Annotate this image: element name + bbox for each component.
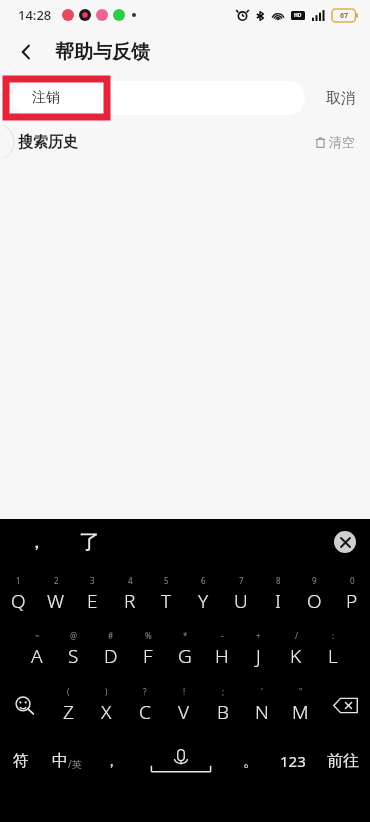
staticText: ! <box>183 686 186 697</box>
button[interactable]: ( <box>49 677 87 733</box>
staticText: A <box>31 643 43 669</box>
staticText: F <box>143 643 153 669</box>
button[interactable]: 1 <box>0 567 37 621</box>
button[interactable]: 取消 <box>322 83 360 114</box>
staticText: M <box>292 699 309 725</box>
staticText: 7 <box>239 575 244 586</box>
staticText: 1 <box>16 575 21 586</box>
button[interactable]: ; <box>203 677 242 733</box>
staticText: 67 <box>340 11 349 21</box>
button[interactable]: Back <box>8 34 44 70</box>
button[interactable]: + <box>240 621 277 677</box>
staticText: R <box>124 588 136 614</box>
staticText: O <box>307 588 322 614</box>
staticText: X <box>101 699 112 725</box>
button[interactable]: ' <box>242 677 281 733</box>
button[interactable]: Emoji <box>0 677 49 733</box>
button[interactable]: @ <box>55 621 92 677</box>
button[interactable]: 清空 <box>312 129 358 155</box>
staticText: * <box>183 630 188 641</box>
staticText: 注销 <box>32 89 60 107</box>
staticText: 2 <box>54 575 59 586</box>
staticText: 。 <box>243 752 258 771</box>
staticText: D <box>104 643 118 669</box>
staticText: ， <box>104 752 119 771</box>
button[interactable] <box>12 81 305 115</box>
staticText: 6 <box>201 575 206 586</box>
staticText: 清空 <box>329 134 355 150</box>
staticText: 123 <box>280 751 306 771</box>
staticText: L <box>328 643 338 669</box>
button[interactable]: 7 <box>222 567 259 621</box>
staticText: @ <box>70 630 78 641</box>
button[interactable]: 。 <box>231 733 270 789</box>
staticText: ' <box>261 686 263 697</box>
staticText: 了 <box>79 529 100 555</box>
staticText: ~ <box>35 630 40 641</box>
button[interactable]: - <box>203 621 240 677</box>
staticText: B <box>217 699 229 725</box>
button[interactable]: 了 <box>62 519 116 565</box>
button[interactable]: : <box>314 621 351 677</box>
button[interactable]: " <box>281 677 320 733</box>
staticText: C <box>139 699 151 725</box>
staticText: G <box>178 643 192 669</box>
button[interactable]: 6 <box>185 567 222 621</box>
button[interactable]: 5 <box>148 567 185 621</box>
button[interactable]: 123 <box>270 733 316 789</box>
staticText: 帮助与反馈 <box>55 40 150 64</box>
staticText: N <box>255 699 269 725</box>
button[interactable]: 2 <box>37 567 74 621</box>
button[interactable]: Space, voice input <box>131 733 231 789</box>
staticText: 0 <box>350 575 355 586</box>
button[interactable]: # <box>92 621 129 677</box>
staticText: T <box>161 588 172 614</box>
button[interactable]: ) <box>87 677 125 733</box>
staticText: K <box>290 643 302 669</box>
staticText: : <box>332 630 335 641</box>
staticText: 8 <box>276 575 281 586</box>
staticText: S <box>68 643 79 669</box>
staticText: % <box>145 630 152 641</box>
button[interactable]: 中 <box>42 733 92 789</box>
staticText: Z <box>63 699 74 725</box>
button[interactable]: ? <box>125 677 164 733</box>
button[interactable]: 3 <box>74 567 111 621</box>
staticText: Y <box>198 588 209 614</box>
staticText: 5 <box>164 575 169 586</box>
staticText: ) <box>105 686 108 697</box>
staticText: ? <box>143 686 147 697</box>
staticText: 搜索历史 <box>18 133 78 152</box>
staticText: H <box>215 643 229 669</box>
button[interactable]: ~ <box>18 621 55 677</box>
button[interactable]: Backspace <box>320 677 370 733</box>
staticText: ( <box>67 686 70 697</box>
staticText: E <box>87 588 98 614</box>
button[interactable]: ! <box>164 677 203 733</box>
staticText: Q <box>11 588 26 614</box>
staticText: " <box>299 686 303 697</box>
staticText: W <box>47 588 65 614</box>
button[interactable]: 0 <box>333 567 370 621</box>
staticText: - <box>221 630 224 641</box>
button[interactable]: 8 <box>259 567 296 621</box>
staticText: I <box>275 588 281 614</box>
staticText: 4 <box>128 575 133 586</box>
button[interactable]: 符 <box>0 733 42 789</box>
button[interactable]: % <box>129 621 166 677</box>
staticText: /英 <box>68 757 82 771</box>
button[interactable]: 9 <box>296 567 333 621</box>
staticText: P <box>346 588 358 614</box>
button[interactable]: 前往 <box>316 733 370 789</box>
button[interactable]: / <box>277 621 314 677</box>
button[interactable]: 4 <box>111 567 148 621</box>
staticText: 14:28 <box>18 6 52 24</box>
staticText: 取消 <box>326 89 356 108</box>
button[interactable]: ， <box>92 733 131 789</box>
button[interactable]: Close keyboard suggestions <box>334 531 356 553</box>
staticText: J <box>256 643 261 669</box>
staticText: # <box>108 630 114 641</box>
button[interactable]: ， <box>10 519 62 565</box>
staticText: V <box>178 699 190 725</box>
button[interactable]: * <box>166 621 203 677</box>
